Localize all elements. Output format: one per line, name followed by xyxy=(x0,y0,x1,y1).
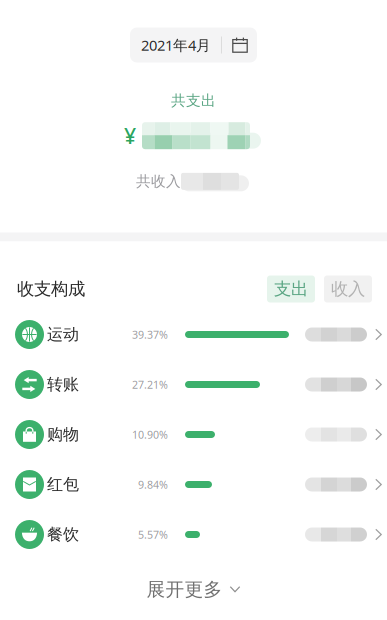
button[interactable]: 餐饮 xyxy=(0,509,387,559)
button[interactable]: 红包 xyxy=(0,459,387,509)
staticText: 2021年4月 xyxy=(141,35,211,55)
staticText: 转账 xyxy=(47,375,79,394)
staticText: 共收入 xyxy=(136,172,181,190)
staticText: 购物 xyxy=(47,425,79,444)
button[interactable]: 运动 xyxy=(0,309,387,359)
button[interactable]: 转账 xyxy=(0,359,387,409)
staticText: 共支出 xyxy=(171,91,216,109)
staticText: 39.37% xyxy=(132,327,168,342)
staticText: 红包 xyxy=(47,475,79,494)
staticText: 餐饮 xyxy=(47,525,79,544)
staticText: 9.84% xyxy=(138,477,168,492)
staticText: 10.90% xyxy=(132,427,168,442)
button[interactable]: 2021年4月 xyxy=(130,27,257,62)
staticText: 运动 xyxy=(47,325,79,344)
staticText: 收支构成 xyxy=(17,278,85,300)
button[interactable]: 展开更多 xyxy=(0,567,387,611)
staticText: 展开更多 xyxy=(146,578,222,601)
button[interactable]: 购物 xyxy=(0,409,387,459)
button[interactable]: 支出 xyxy=(267,275,315,302)
staticText: 5.57% xyxy=(138,527,168,542)
button[interactable]: 收入 xyxy=(324,275,372,302)
staticText: 收入 xyxy=(331,278,365,300)
staticText: 27.21% xyxy=(132,377,168,392)
staticText: ¥ xyxy=(124,121,136,150)
staticText: 支出 xyxy=(274,278,308,300)
